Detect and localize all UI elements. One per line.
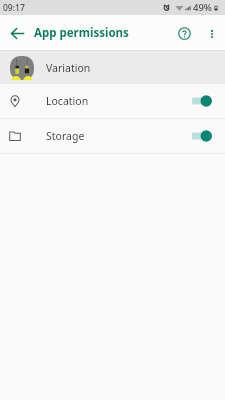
staticText: App permissions (34, 25, 129, 41)
button[interactable]: Storage permission (187, 121, 217, 151)
button[interactable]: Storage (0, 119, 225, 153)
staticText: Storage (46, 129, 85, 143)
button[interactable]: Navigate up (0, 16, 34, 50)
button[interactable]: More options (198, 20, 225, 47)
button[interactable]: Location (0, 84, 225, 118)
button[interactable]: Location permission (187, 86, 217, 116)
staticText: Variation (46, 61, 91, 75)
staticText: Location (46, 94, 89, 108)
staticText: 09:17 (3, 2, 25, 14)
button[interactable]: Variation (0, 51, 225, 84)
button[interactable]: Help (169, 18, 199, 48)
staticText: 49% (193, 1, 212, 14)
